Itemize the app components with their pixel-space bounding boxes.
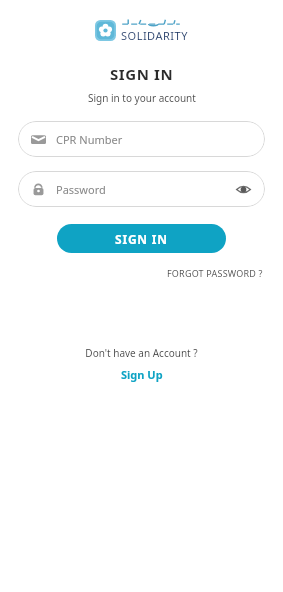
button[interactable]: Password [18, 171, 265, 207]
staticText: Don't have an Account ? [85, 346, 198, 360]
staticText: SIGN IN [110, 64, 174, 84]
button[interactable]: Sign Up [115, 365, 169, 384]
button[interactable]: Show password [236, 182, 251, 197]
button[interactable]: CPR Number [18, 121, 265, 157]
staticText: SOLIDARITY [121, 28, 188, 43]
staticText: Password [56, 182, 106, 197]
staticText: Sign in to your account [88, 91, 196, 105]
staticText: CPR Number [56, 132, 123, 147]
staticText: FORGOT PASSWORD ? [167, 267, 263, 279]
button[interactable]: SIGN IN [57, 224, 226, 253]
staticText: SIGN IN [115, 231, 168, 247]
staticText: Sign Up [121, 367, 163, 382]
button[interactable]: FORGOT PASSWORD ? [165, 265, 265, 281]
